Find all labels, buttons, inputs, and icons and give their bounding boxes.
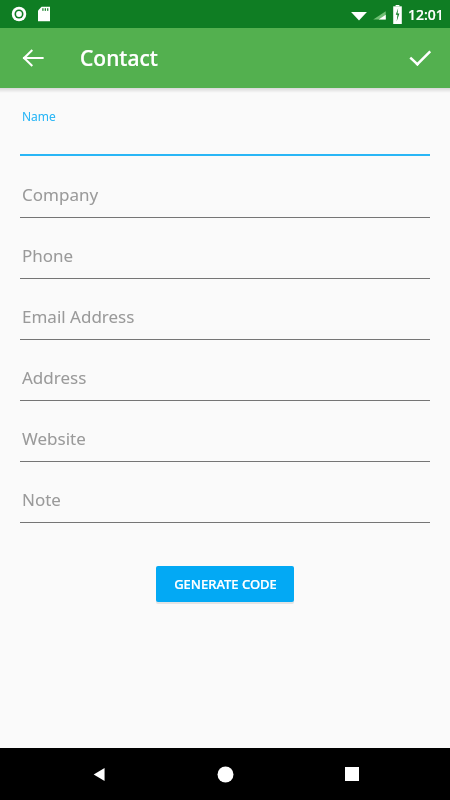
staticText: Email Address — [22, 305, 135, 328]
button[interactable]: Email Address — [0, 285, 450, 346]
button[interactable]: Recent apps — [328, 750, 376, 798]
button[interactable]: Phone — [0, 224, 450, 285]
button[interactable]: Save contact — [396, 34, 444, 82]
staticText: Company — [22, 183, 99, 206]
button[interactable]: Address — [0, 346, 450, 407]
staticText: GENERATE CODE — [174, 575, 277, 593]
button[interactable]: Company — [0, 163, 450, 224]
staticText: Note — [22, 488, 61, 511]
button[interactable]: Back — [9, 34, 57, 82]
staticText: 12:01 — [408, 5, 444, 24]
staticText: Contact — [80, 44, 158, 73]
staticText: Address — [22, 366, 87, 389]
button[interactable]: Note — [0, 468, 450, 529]
staticText: Phone — [22, 244, 74, 267]
button[interactable]: Name — [0, 94, 450, 163]
staticText: Name — [22, 108, 56, 124]
button[interactable]: Home — [201, 750, 249, 798]
button[interactable]: GENERATE CODE — [156, 566, 294, 602]
button[interactable]: Back — [76, 750, 124, 798]
button[interactable]: Website — [0, 407, 450, 468]
staticText: Website — [22, 427, 86, 450]
